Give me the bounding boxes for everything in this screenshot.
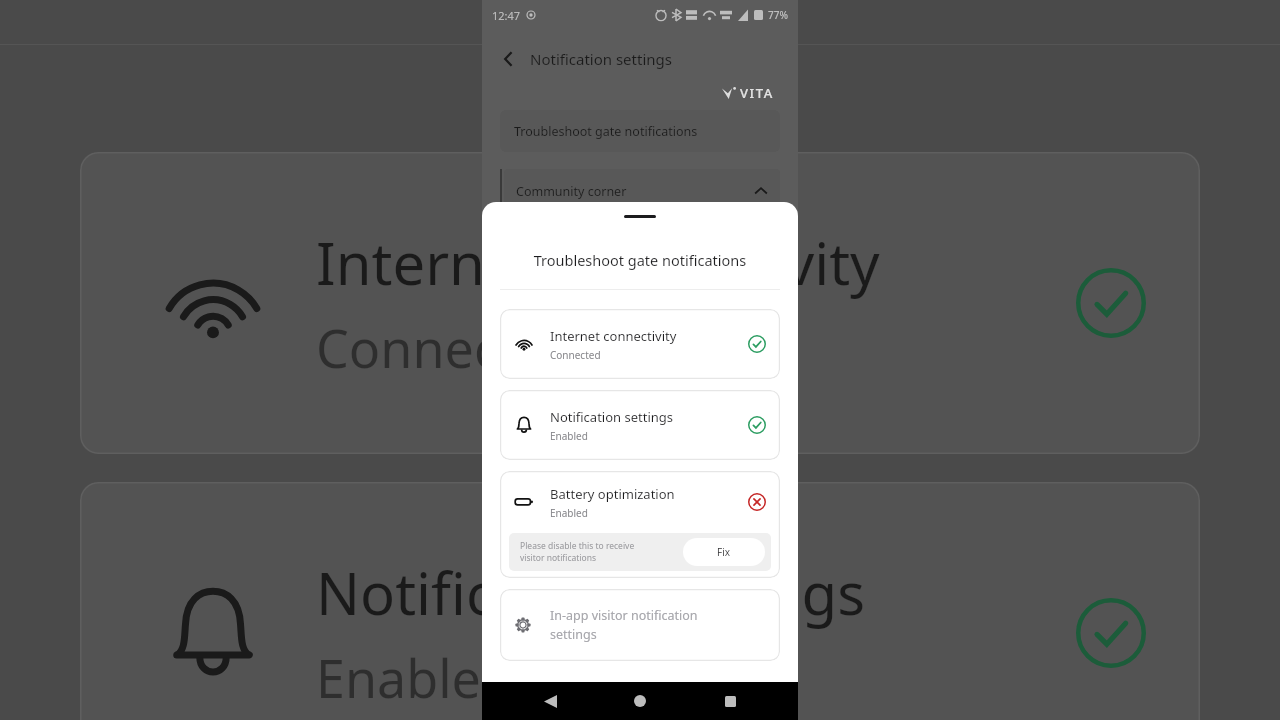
button[interactable]: Community corner (504, 169, 780, 213)
staticText: Enabled (316, 642, 513, 713)
staticText: Enabled (550, 429, 588, 443)
staticText: 77% (768, 8, 788, 22)
staticText: Community corner (516, 183, 627, 200)
staticText: Fix (717, 545, 731, 559)
button[interactable]: In-app visitor notification (500, 589, 780, 661)
staticText: visitor notifications (520, 552, 597, 564)
button[interactable]: Internet connectivity (500, 309, 780, 379)
staticText: Troubleshoot gate notifications (482, 250, 798, 270)
staticText: 12:47 (492, 8, 521, 23)
button[interactable]: Fix (683, 538, 765, 566)
staticText: Troubleshoot gate notifications (514, 123, 698, 140)
staticText: settings (550, 626, 597, 643)
staticText: VITA (740, 84, 774, 102)
staticText: Notification settings (550, 408, 674, 426)
button[interactable]: Troubleshoot gate notifications (500, 110, 780, 152)
staticText: Battery optimization (550, 485, 675, 503)
button[interactable]: Home (618, 682, 662, 720)
staticText: Connected (316, 312, 579, 383)
button[interactable]: Recent apps (708, 682, 752, 720)
staticText: Notification settings (316, 553, 865, 632)
staticText: In-app visitor notification (550, 607, 698, 624)
staticText: Please disable this to receive (520, 540, 635, 552)
staticText: Enabled (550, 506, 588, 520)
button[interactable]: Battery optimization (500, 471, 780, 578)
staticText: Connected (550, 348, 601, 362)
button[interactable]: Back (528, 682, 572, 720)
staticText: Notification settings (530, 49, 672, 69)
button[interactable]: Notification settings (500, 390, 780, 460)
button[interactable]: Back (496, 46, 522, 72)
staticText: Internet connectivity (550, 327, 677, 345)
staticText: Internet connectivity (316, 223, 880, 302)
